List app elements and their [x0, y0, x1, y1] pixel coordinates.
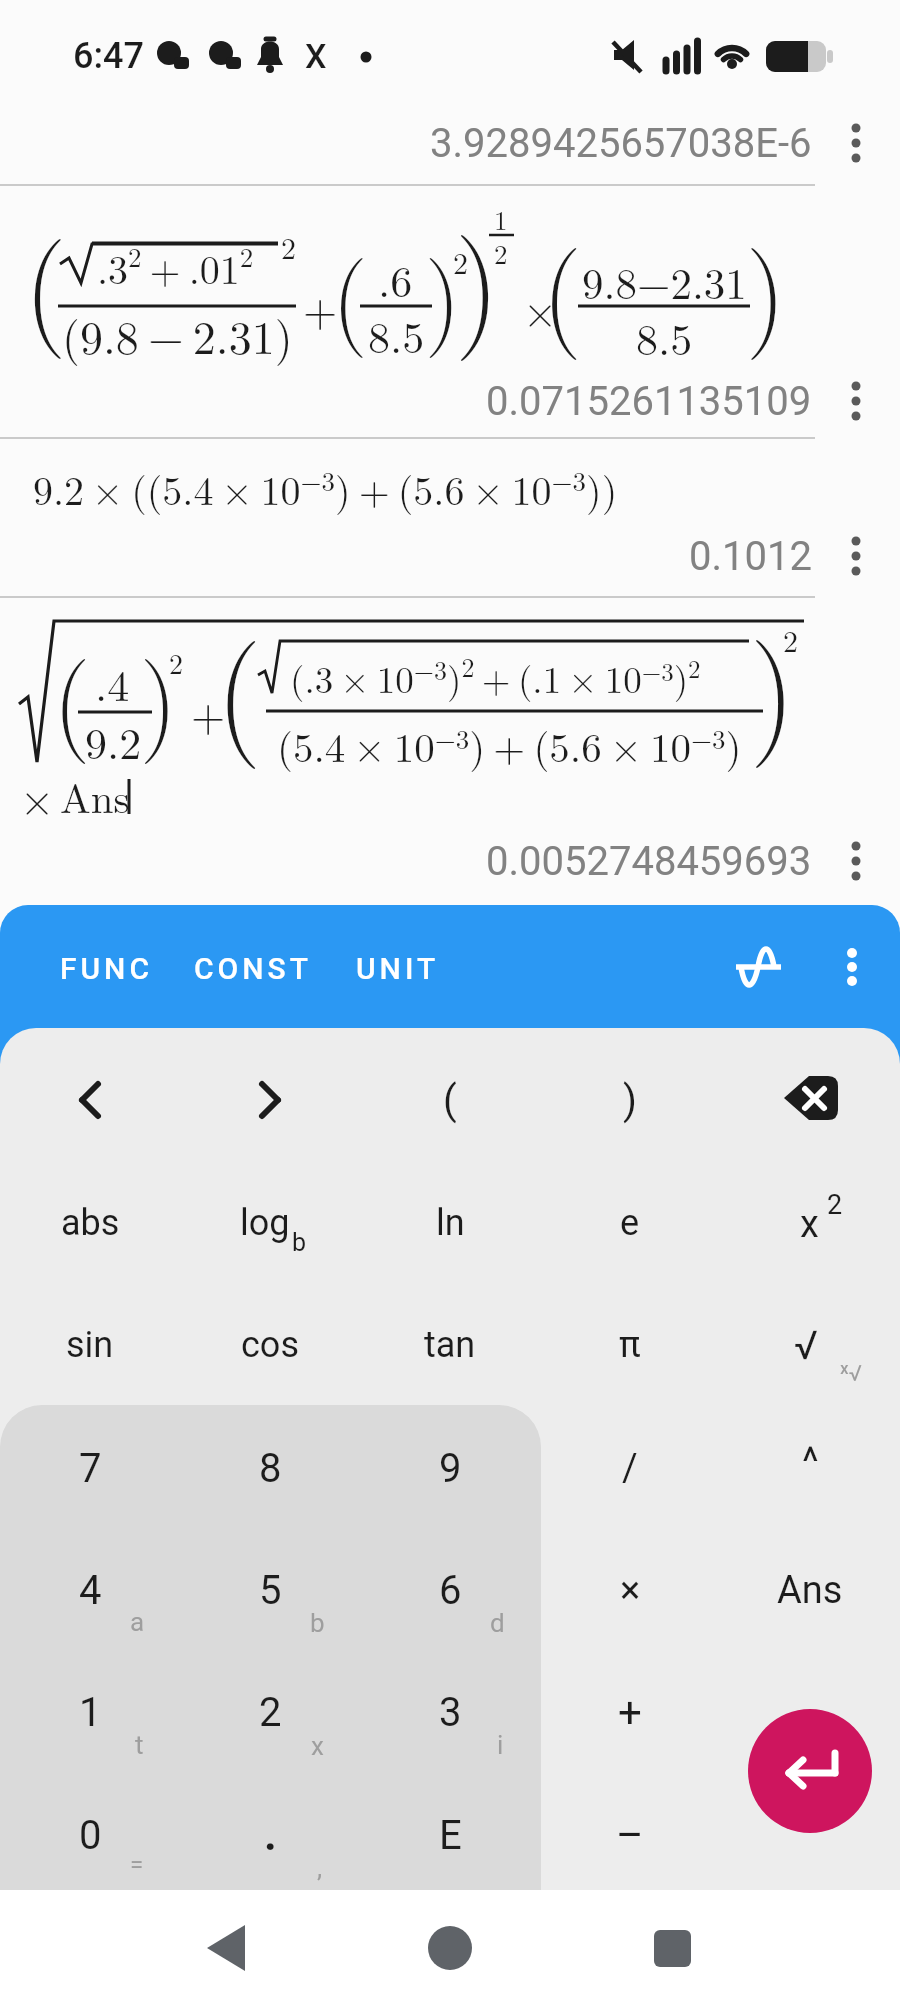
button[interactable]: UNIT [328, 928, 468, 1008]
staticText: x [800, 1202, 819, 1247]
staticText: ( [216, 593, 262, 774]
staticText: ( [24, 194, 67, 363]
button[interactable]: CONST [183, 928, 323, 1008]
staticText: (9.8 − 2.31) [62, 302, 293, 367]
staticText: 4 [79, 1567, 102, 1614]
staticText: . [264, 1809, 277, 1861]
button[interactable]: Ans [730, 1534, 890, 1646]
staticText: .32 + .012 [97, 237, 254, 296]
staticText: = [130, 1851, 144, 1879]
staticText: ) [746, 206, 786, 364]
button[interactable]: 8 [190, 1412, 350, 1524]
staticText: Ans [60, 767, 130, 825]
staticText: a [130, 1607, 145, 1637]
button[interactable] [820, 928, 886, 1008]
staticText: 5 [259, 1567, 282, 1614]
staticText: 1 [494, 200, 508, 238]
staticText: X [305, 36, 327, 76]
staticText: 2 [827, 1189, 843, 1221]
staticText: 1 [79, 1689, 102, 1736]
staticText: – [616, 1811, 644, 1860]
button[interactable] [405, 1903, 495, 1993]
button[interactable]: cos [190, 1289, 350, 1401]
staticText: + [618, 1688, 642, 1737]
button[interactable]: × [550, 1534, 710, 1646]
button[interactable] [180, 1903, 270, 1993]
button[interactable]: e [550, 1167, 710, 1279]
staticText: ( [443, 1077, 457, 1124]
button[interactable]: sin [10, 1289, 170, 1401]
staticText: ( [53, 620, 91, 768]
staticText: 2 [783, 618, 798, 661]
button[interactable] [816, 361, 896, 441]
staticText: t [135, 1730, 144, 1760]
button[interactable]: / [550, 1412, 710, 1524]
staticText: 6 [439, 1567, 462, 1614]
button[interactable]: ) [550, 1044, 710, 1156]
staticText: log [240, 1202, 290, 1244]
button[interactable]: . [190, 1779, 350, 1891]
button[interactable]: 3 [370, 1656, 530, 1768]
staticText: ) [140, 620, 178, 768]
staticText: Ans [777, 1568, 843, 1613]
staticText: 0.0715261135109 [486, 378, 812, 425]
button[interactable]: 7 [10, 1412, 170, 1524]
button[interactable]: 1 [10, 1656, 170, 1768]
staticText: cos [241, 1324, 299, 1366]
staticText: x [311, 1731, 324, 1761]
button[interactable] [628, 1903, 718, 1993]
staticText: d [490, 1608, 505, 1638]
button[interactable]: ^ [730, 1406, 890, 1518]
button[interactable]: √ [726, 1289, 886, 1401]
button[interactable]: 2 [190, 1656, 350, 1768]
staticText: .6 [378, 247, 413, 309]
button[interactable]: 6 [370, 1534, 530, 1646]
staticText: ) [425, 220, 461, 361]
staticText: 8.5 [368, 303, 425, 365]
staticText: 2 [169, 642, 184, 682]
staticText: × [523, 277, 558, 339]
button[interactable]: abs [10, 1167, 170, 1279]
staticText: √ [794, 1322, 818, 1369]
staticText: i [497, 1730, 504, 1760]
button[interactable] [816, 516, 896, 596]
button[interactable] [730, 1044, 890, 1156]
staticText: 3 [439, 1689, 462, 1736]
staticText: ( [542, 206, 582, 364]
button[interactable]: + [550, 1656, 710, 1768]
staticText: × [620, 1568, 641, 1613]
button[interactable]: 9 [370, 1412, 530, 1524]
button[interactable]: 4 [10, 1534, 170, 1646]
staticText: 9.2 [85, 709, 142, 771]
button[interactable]: tan [370, 1289, 530, 1401]
staticText: / [622, 1446, 638, 1491]
button[interactable]: E [370, 1779, 530, 1891]
button[interactable]: FUNC [36, 928, 176, 1008]
staticText: 0.1012 [689, 533, 812, 580]
staticText: ) [455, 187, 500, 365]
button[interactable] [718, 928, 802, 1008]
button[interactable] [10, 1044, 170, 1156]
button[interactable] [730, 1167, 890, 1279]
button[interactable]: ln [370, 1167, 530, 1279]
button[interactable] [190, 1044, 350, 1156]
button[interactable]: π [550, 1289, 710, 1401]
button[interactable] [816, 821, 896, 901]
button[interactable]: 0 [10, 1779, 170, 1891]
staticText: , [317, 1853, 323, 1883]
button[interactable]: – [550, 1779, 710, 1891]
staticText: b [310, 1608, 325, 1638]
staticText: 9.2 × ((5.4 × 10−3) + (5.6 × 10−3)) [33, 460, 618, 517]
button[interactable]: ( [370, 1044, 530, 1156]
button[interactable] [748, 1709, 872, 1833]
staticText: FUNC [60, 951, 153, 986]
staticText: 9.8−2.31 [582, 251, 747, 312]
button[interactable] [816, 103, 896, 183]
button[interactable] [190, 1167, 350, 1279]
staticText: 9 [439, 1445, 462, 1492]
staticText: (5.4 × 10−3) + (5.6 × 10−3) [277, 716, 742, 774]
staticText: 6:47 [73, 35, 144, 77]
staticText: e [620, 1202, 640, 1244]
staticText: + [303, 276, 338, 338]
button[interactable]: 5 [190, 1534, 350, 1646]
